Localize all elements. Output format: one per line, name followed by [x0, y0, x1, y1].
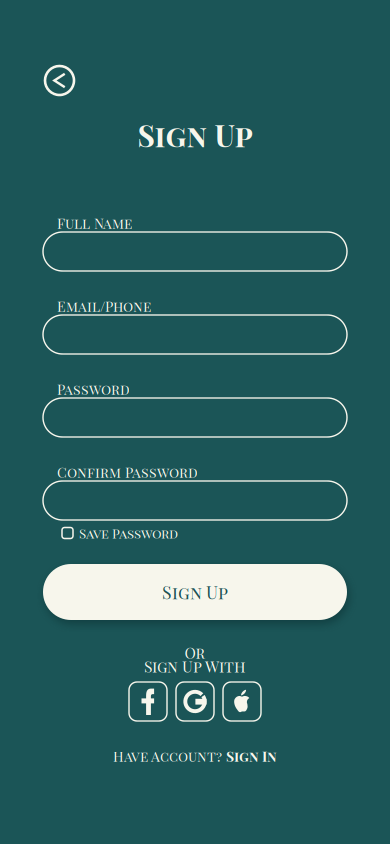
staticText: Or: [184, 642, 205, 663]
staticText: Email/Phone: [57, 297, 151, 315]
button[interactable]: Sign Up: [43, 564, 347, 620]
button[interactable]: Sign up with Google: [176, 682, 214, 721]
button[interactable]: Save Password: [62, 526, 178, 540]
button[interactable]: Have Account?: [0, 749, 390, 763]
button[interactable]: Sign up with Facebook: [129, 682, 167, 721]
staticText: Sign Up With: [144, 655, 246, 676]
staticText: Have Account?: [113, 747, 222, 765]
button[interactable]: Sign up with Apple: [223, 682, 261, 721]
staticText: Sign Up: [137, 115, 252, 155]
staticText: Sign Up: [162, 580, 228, 604]
staticText: Save Password: [79, 524, 178, 542]
staticText: Full Name: [57, 214, 132, 232]
staticText: Password: [57, 380, 130, 398]
staticText: Confirm Password: [57, 463, 198, 481]
staticText: Sign In: [226, 747, 277, 765]
button[interactable]: Back: [45, 66, 74, 95]
